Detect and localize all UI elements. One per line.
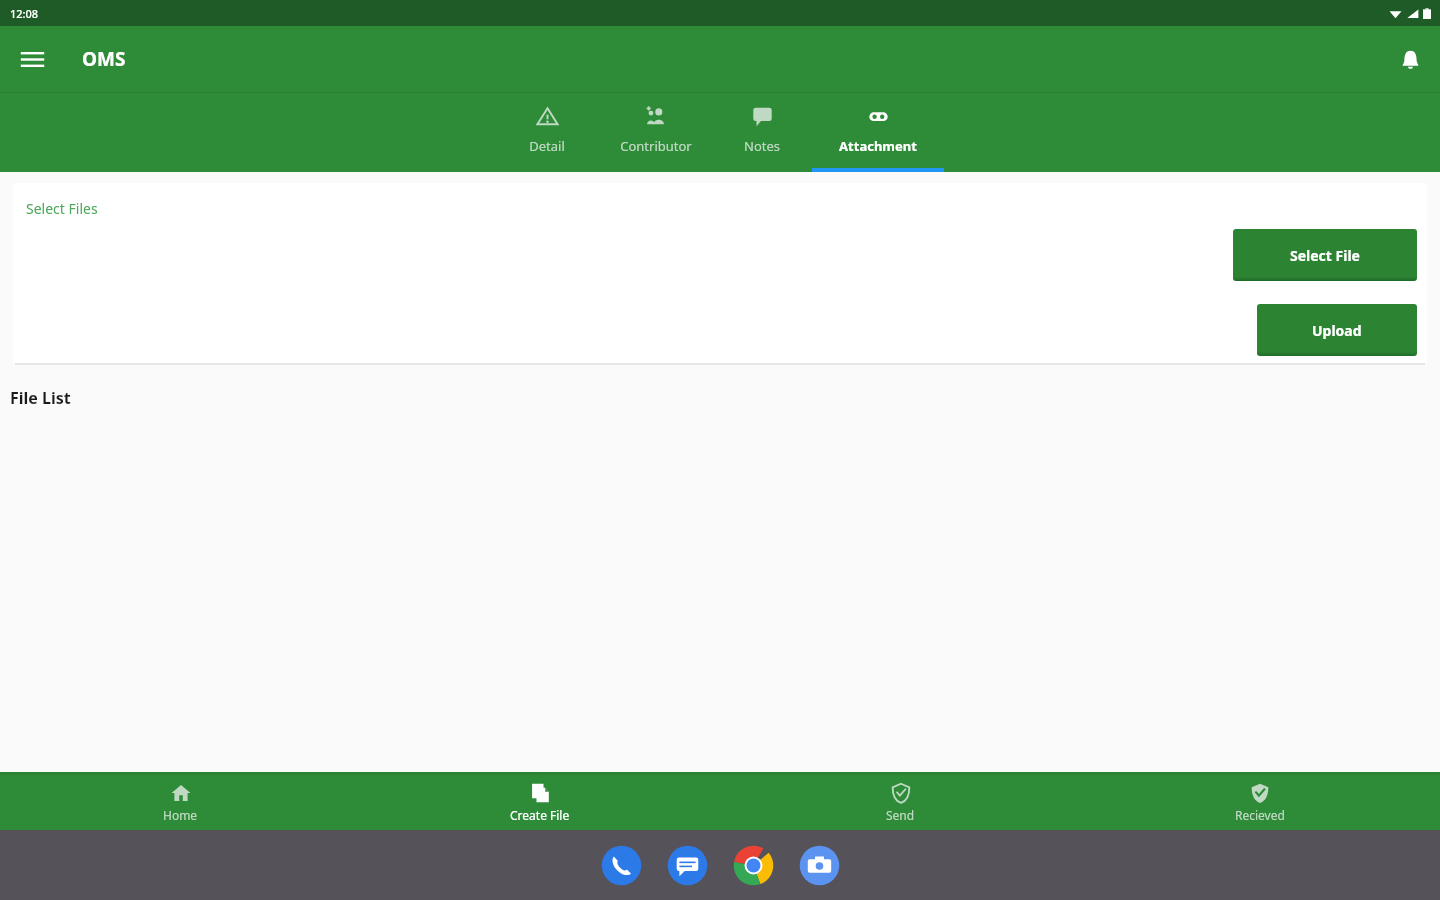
button[interactable]: Contributor xyxy=(600,92,712,172)
staticText: Select File xyxy=(1290,246,1360,265)
staticText: Notes xyxy=(744,137,780,155)
staticText: Create File xyxy=(510,807,570,823)
button[interactable]: Chrome xyxy=(731,843,776,888)
button[interactable]: Upload xyxy=(1257,304,1417,356)
button[interactable]: Create File xyxy=(360,775,720,830)
button[interactable]: Attachment xyxy=(812,92,944,172)
staticText: Contributor xyxy=(620,137,692,155)
button[interactable]: Detail xyxy=(493,92,600,172)
staticText: Detail xyxy=(529,137,565,155)
button[interactable]: Home xyxy=(0,775,360,830)
staticText: File List xyxy=(10,387,71,409)
staticText: Home xyxy=(163,807,198,823)
button[interactable]: Open navigation menu xyxy=(13,40,51,78)
button[interactable]: Camera xyxy=(797,843,842,888)
staticText: Send xyxy=(886,807,915,823)
button[interactable]: Select File xyxy=(1233,229,1417,281)
button[interactable]: Phone xyxy=(599,843,644,888)
staticText: Select Files xyxy=(26,199,98,218)
staticText: 12:08 xyxy=(10,6,39,21)
staticText: Recieved xyxy=(1235,807,1285,823)
staticText: OMS xyxy=(82,46,126,72)
staticText: Attachment xyxy=(839,137,917,155)
button[interactable]: Messages xyxy=(665,843,710,888)
staticText: Upload xyxy=(1312,321,1362,340)
button[interactable]: Notes xyxy=(712,92,812,172)
button[interactable]: Recieved xyxy=(1080,775,1440,830)
button[interactable]: Notifications xyxy=(1390,39,1430,79)
button[interactable]: Send xyxy=(720,775,1080,830)
